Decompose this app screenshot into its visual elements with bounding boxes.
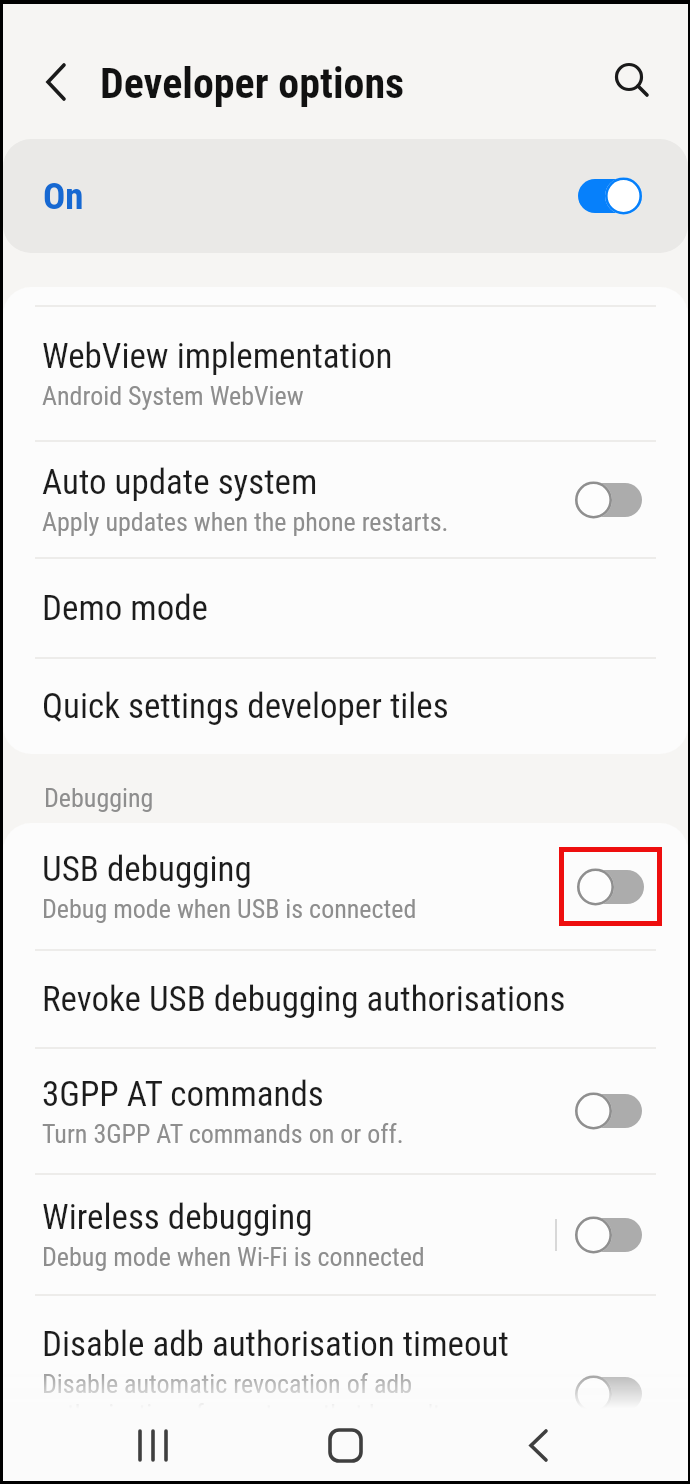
staticText: Turn 3GPP AT commands on or off. — [42, 1119, 404, 1149]
staticText: Wireless debugging — [42, 1197, 313, 1238]
button[interactable] — [507, 1415, 567, 1475]
staticText: Demo mode — [42, 588, 209, 629]
button[interactable] — [33, 52, 83, 102]
button[interactable]: Revoke USB debugging authorisations — [3, 951, 688, 1047]
staticText: Debugging — [44, 783, 154, 813]
staticText: On — [43, 175, 575, 218]
button[interactable] — [315, 1415, 375, 1475]
staticText: Auto update system — [42, 462, 318, 503]
button[interactable]: WebView implementation — [3, 307, 688, 440]
staticText: Debug mode when USB is connected — [42, 894, 417, 924]
button[interactable]: Demo mode — [3, 559, 688, 657]
staticText: 3GPP AT commands — [42, 1074, 324, 1115]
button[interactable]: Quick settings developer tiles — [3, 659, 688, 754]
staticText: Disable automatic revocation of adb — [42, 1369, 413, 1399]
button[interactable]: Wireless debugging — [3, 1175, 688, 1294]
button[interactable]: USB debugging — [3, 823, 688, 949]
staticText: Developer options — [100, 59, 405, 108]
staticText: Revoke USB debugging authorisations — [42, 979, 566, 1020]
staticText: Quick settings developer tiles — [42, 686, 449, 727]
staticText: authorisations for systems that haven't — [42, 1399, 441, 1429]
button[interactable]: On — [3, 139, 688, 253]
staticText: Debug mode when Wi-Fi is connected — [42, 1242, 425, 1272]
button[interactable] — [603, 52, 663, 112]
staticText: USB debugging — [42, 849, 252, 890]
button[interactable]: Disable adb authorisation timeout — [3, 1296, 688, 1429]
staticText: Apply updates when the phone restarts. — [42, 507, 449, 537]
button[interactable]: 3GPP AT commands — [3, 1049, 688, 1173]
staticText: Disable adb authorisation timeout — [42, 1324, 509, 1365]
button[interactable] — [123, 1415, 183, 1475]
button[interactable]: Auto update system — [3, 442, 688, 557]
staticText: Android System WebView — [42, 381, 304, 411]
staticText: WebView implementation — [42, 336, 393, 377]
